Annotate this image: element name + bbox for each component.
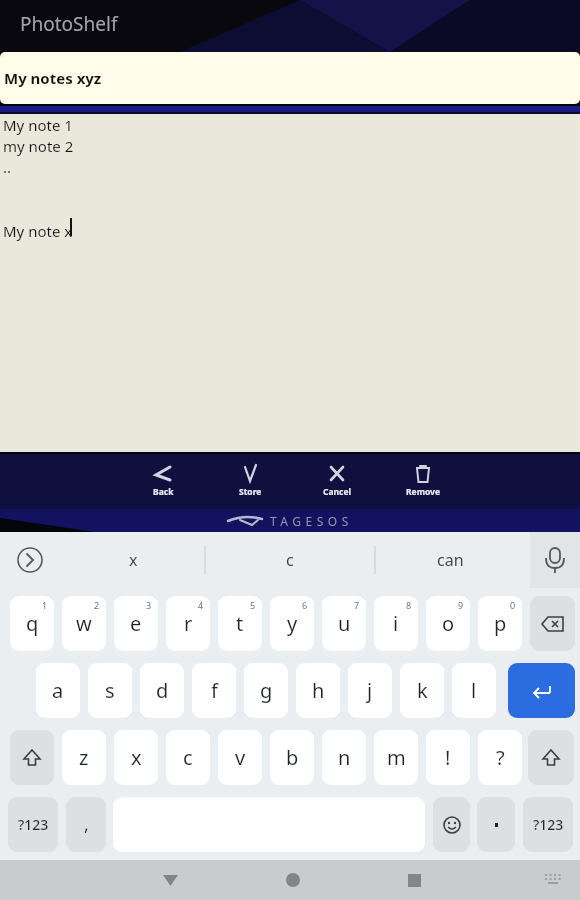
staticText: q [26, 610, 39, 637]
button[interactable]: s [88, 663, 132, 718]
staticText: 4 [198, 599, 204, 611]
button[interactable]: k [400, 663, 444, 718]
staticText: 8 [406, 599, 412, 611]
staticText: j [367, 677, 373, 704]
button[interactable]: b [270, 730, 314, 785]
button[interactable] [530, 532, 580, 588]
button[interactable]: h [296, 663, 340, 718]
button[interactable]: can [410, 532, 490, 588]
button[interactable]: My notes xyz [0, 52, 580, 104]
button[interactable]: a [36, 663, 80, 718]
staticText: w [76, 610, 92, 637]
staticText: x [131, 744, 142, 771]
button[interactable] [530, 596, 575, 651]
staticText: 7 [354, 599, 360, 611]
staticText: My note 1 my note 2 .. [3, 115, 74, 178]
button[interactable] [269, 860, 317, 900]
staticText: y [287, 610, 298, 637]
button[interactable]: u [322, 596, 366, 651]
staticText: Cancel [323, 486, 352, 498]
button[interactable]: m [374, 730, 418, 785]
button[interactable]: n [322, 730, 366, 785]
button[interactable]: ? [478, 730, 522, 785]
staticText: v [235, 744, 246, 771]
staticText: Store [239, 486, 262, 498]
staticText: , [84, 812, 89, 837]
staticText: k [417, 677, 428, 704]
staticText: 1 [42, 599, 48, 611]
staticText: TAGESOS [270, 513, 353, 529]
button[interactable]: g [244, 663, 288, 718]
button[interactable]: v [218, 730, 262, 785]
staticText: h [312, 677, 325, 704]
button[interactable]: w [62, 596, 106, 651]
staticText: o [442, 610, 455, 637]
staticText: 3 [146, 599, 152, 611]
staticText: e [130, 610, 142, 637]
button[interactable]: My note 1 my note 2 .. [0, 114, 580, 452]
button[interactable]: ! [426, 730, 470, 785]
staticText: 6 [302, 599, 308, 611]
staticText: Remove [406, 486, 441, 498]
staticText: PhotoShelf [20, 11, 118, 37]
button[interactable]: ?123 [8, 797, 58, 852]
button[interactable]: i [374, 596, 418, 651]
button[interactable]: o [426, 596, 470, 651]
staticText: p [494, 610, 507, 637]
staticText: can [437, 549, 464, 571]
button[interactable]: x [114, 730, 158, 785]
staticText: d [156, 677, 169, 704]
staticText: ?123 [18, 815, 49, 834]
button[interactable]: x [93, 532, 173, 588]
button[interactable]: c [250, 532, 330, 588]
staticText: 0 [510, 599, 516, 611]
button[interactable]: r [166, 596, 210, 651]
button[interactable]: Cancel [297, 456, 377, 508]
button[interactable] [10, 730, 54, 785]
button[interactable] [508, 663, 575, 718]
staticText: Back [153, 486, 174, 498]
staticText: g [260, 677, 273, 704]
staticText: 2 [94, 599, 100, 611]
button[interactable]: Back [123, 456, 203, 508]
staticText: ? [496, 744, 505, 771]
button[interactable]: Remove [383, 456, 463, 508]
button[interactable] [146, 860, 194, 900]
button[interactable] [477, 797, 515, 852]
button[interactable]: Store [210, 456, 290, 508]
button[interactable]: j [348, 663, 392, 718]
button[interactable]: y [270, 596, 314, 651]
staticText: u [338, 610, 351, 637]
staticText: r [184, 610, 193, 637]
button[interactable]: c [166, 730, 210, 785]
staticText: My note x [3, 221, 73, 241]
staticText: x [129, 549, 138, 571]
button[interactable]: ?123 [523, 797, 573, 852]
button[interactable]: f [192, 663, 236, 718]
button[interactable]: p [478, 596, 522, 651]
button[interactable] [528, 730, 574, 785]
staticText: z [79, 744, 89, 771]
button[interactable] [528, 860, 576, 900]
button[interactable]: d [140, 663, 184, 718]
staticText: ?123 [533, 815, 564, 834]
button[interactable]: e [114, 596, 158, 651]
staticText: b [286, 744, 299, 771]
button[interactable]: z [62, 730, 106, 785]
staticText: m [387, 744, 406, 771]
button[interactable]: t [218, 596, 262, 651]
button[interactable]: , [66, 797, 106, 852]
button[interactable]: l [452, 663, 496, 718]
staticText: f [211, 677, 218, 704]
staticText: l [471, 677, 477, 704]
staticText: n [338, 744, 351, 771]
staticText: c [183, 744, 193, 771]
staticText: ! [445, 744, 451, 771]
staticText: i [393, 610, 399, 637]
button[interactable]: q [10, 596, 54, 651]
button[interactable] [433, 797, 470, 852]
button[interactable] [391, 860, 439, 900]
staticText: a [52, 677, 64, 704]
staticText: c [286, 549, 294, 571]
